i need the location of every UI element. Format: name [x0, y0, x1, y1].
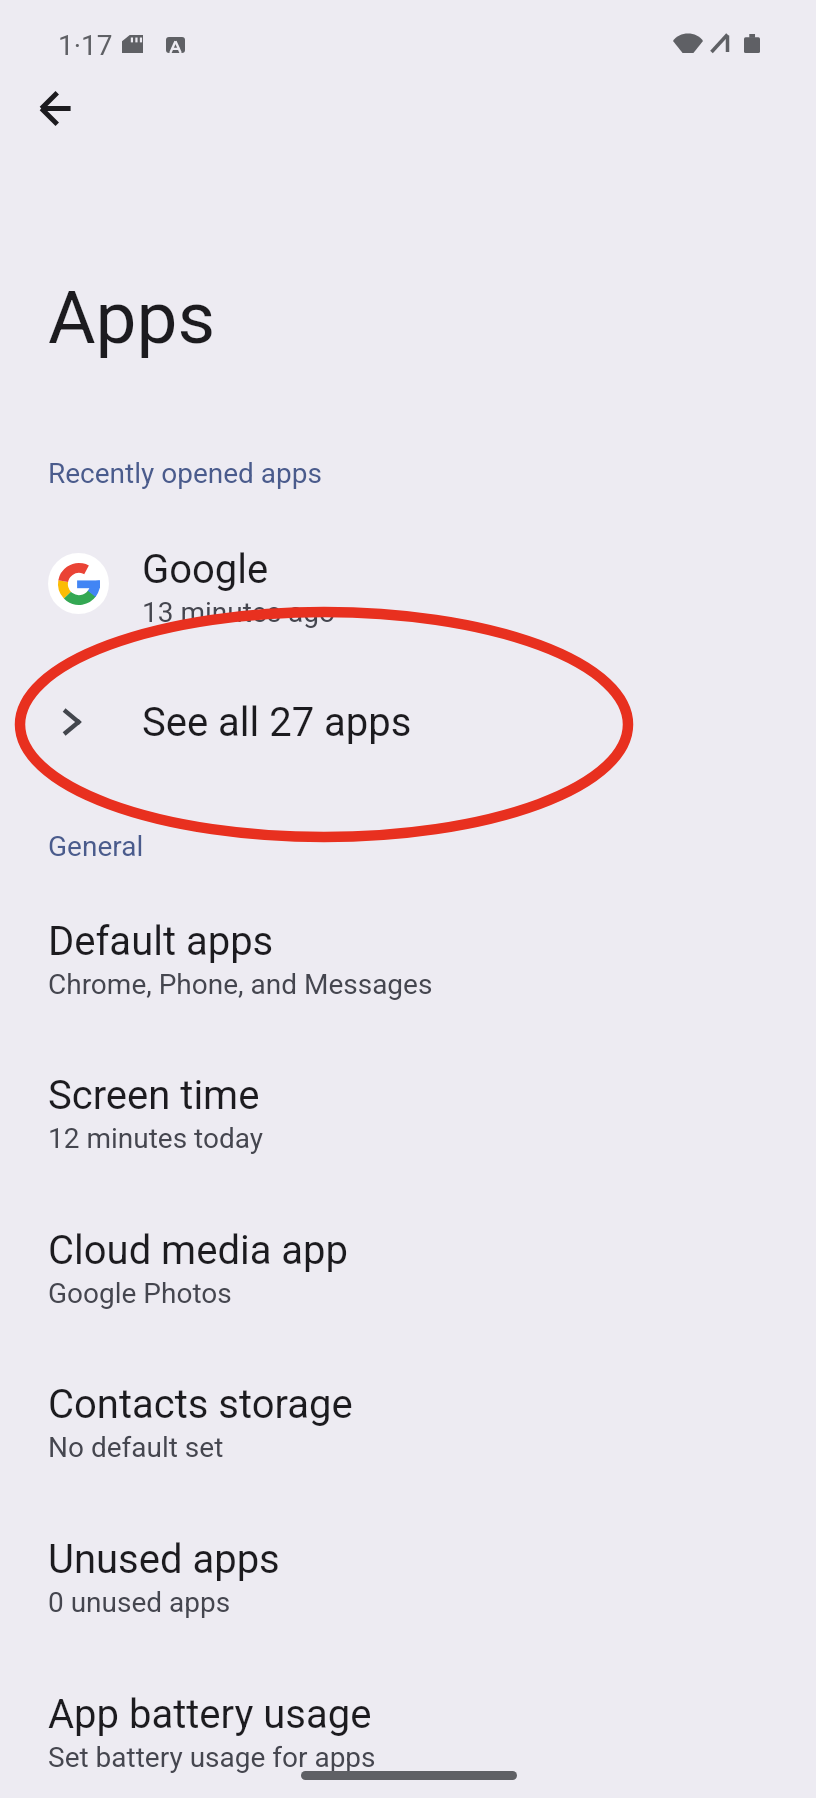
staticText: See all 27 apps	[142, 699, 412, 746]
staticText: Unused apps	[48, 1536, 280, 1583]
staticText: Recently opened apps	[48, 457, 322, 490]
staticText: 12 minutes today	[48, 1122, 264, 1155]
button[interactable]: Cloud media app	[0, 1219, 816, 1369]
button[interactable]: Unused apps	[0, 1528, 816, 1678]
staticText: Contacts storage	[48, 1381, 353, 1428]
staticText: 13 minutes ago	[142, 596, 336, 629]
staticText: Screen time	[48, 1072, 260, 1119]
staticText: App battery usage	[48, 1691, 372, 1738]
button[interactable]: Google	[0, 524, 816, 644]
button[interactable]: Contacts storage	[0, 1373, 816, 1523]
staticText: 1·17	[58, 29, 113, 62]
staticText: Google	[142, 546, 269, 593]
staticText: No default set	[48, 1431, 224, 1464]
button[interactable]: App battery usage	[0, 1683, 816, 1798]
staticText: 0 unused apps	[48, 1586, 231, 1619]
button[interactable]: See all 27 apps	[0, 662, 816, 782]
staticText: Set battery usage for apps	[48, 1741, 376, 1774]
staticText: General	[48, 830, 144, 863]
staticText: Apps	[48, 275, 216, 361]
staticText: Google Photos	[48, 1277, 232, 1310]
staticText: Cloud media app	[48, 1227, 349, 1274]
staticText: Chrome, Phone, and Messages	[48, 968, 433, 1001]
staticText: Default apps	[48, 918, 274, 965]
button[interactable]: Screen time	[0, 1064, 816, 1214]
button[interactable]: Back	[20, 72, 92, 144]
button[interactable]: Default apps	[0, 910, 816, 1060]
